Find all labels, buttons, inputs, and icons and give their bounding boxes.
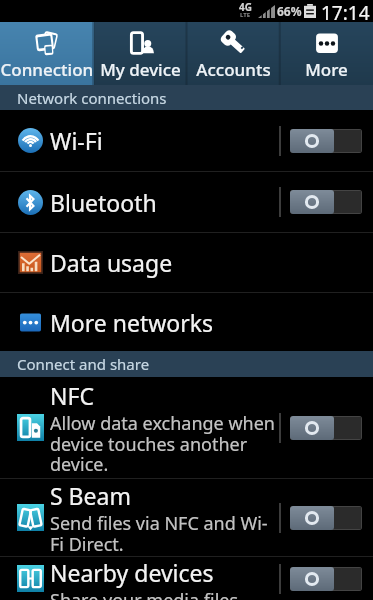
staticText: S Beam <box>50 480 131 511</box>
button[interactable]: More <box>280 22 373 85</box>
button[interactable]: My device <box>94 22 187 85</box>
staticText: Connect and share <box>17 354 150 374</box>
button[interactable]: Bluetooth <box>0 172 373 232</box>
staticText: NFC <box>50 380 94 411</box>
button[interactable]: NFC <box>0 377 373 478</box>
staticText: More networks <box>50 307 214 338</box>
staticText: 17:14 <box>321 0 370 22</box>
button[interactable]: Accounts <box>187 22 280 85</box>
staticText: LTE <box>240 11 251 19</box>
staticText: Nearby devices <box>50 557 214 588</box>
staticText: 4G <box>239 0 252 14</box>
button[interactable]: Toggle Nearby devices <box>290 567 362 591</box>
staticText: Wi-Fi <box>50 125 103 156</box>
staticText: Share your media files with nearby devic… <box>50 588 278 600</box>
button[interactable]: S Beam <box>0 479 373 556</box>
staticText: My device <box>100 58 181 81</box>
staticText: Network connections <box>17 88 167 108</box>
button[interactable]: Data usage <box>0 233 373 292</box>
button[interactable]: Nearby devices <box>0 557 373 600</box>
staticText: 66% <box>277 3 302 19</box>
staticText: Connections <box>0 58 94 81</box>
button[interactable]: Toggle Wi-Fi <box>290 129 362 153</box>
staticText: Bluetooth <box>50 187 157 218</box>
button[interactable]: Wi-Fi <box>0 110 373 171</box>
staticText: More <box>305 58 348 81</box>
button[interactable]: Toggle Bluetooth <box>290 190 362 214</box>
button[interactable]: More networks <box>0 293 373 351</box>
staticText: Allow data exchange when device touches … <box>50 411 278 476</box>
button[interactable]: Toggle NFC <box>290 416 362 440</box>
button[interactable]: Toggle S Beam <box>290 506 362 530</box>
staticText: Send files via NFC and Wi-Fi Direct. <box>50 511 278 556</box>
staticText: Data usage <box>50 247 173 278</box>
button[interactable]: Connections <box>0 22 94 85</box>
staticText: Accounts <box>196 58 271 81</box>
